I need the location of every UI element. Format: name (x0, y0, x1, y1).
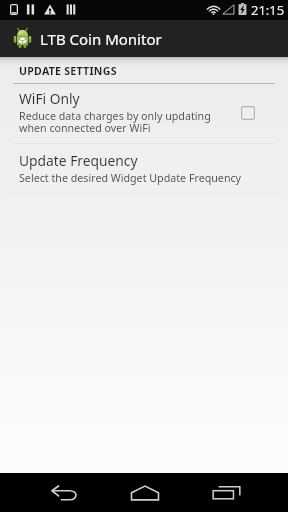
staticText: 21:15 (251, 1, 285, 19)
button[interactable]: Back (34, 473, 94, 512)
staticText: WiFi Only (19, 89, 80, 108)
button[interactable]: WiFi Only (0, 89, 288, 135)
button[interactable]: WiFi Only checkbox (232, 96, 264, 128)
staticText: LTB Coin Monitor (40, 29, 162, 49)
button[interactable]: Recent apps (196, 473, 256, 512)
button[interactable]: Home (115, 473, 175, 512)
staticText: Update Frequency (19, 151, 138, 170)
button[interactable]: Update Frequency (0, 151, 288, 186)
staticText: Reduce data charges by only updating whe… (19, 109, 211, 135)
staticText: UPDATE SETTINGS (19, 64, 117, 78)
staticText: Select the desired Widget Update Frequen… (19, 171, 242, 186)
